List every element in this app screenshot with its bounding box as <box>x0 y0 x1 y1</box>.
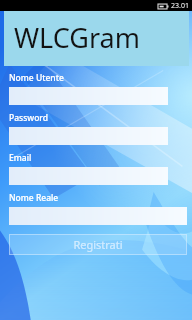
button[interactable] <box>9 87 168 105</box>
staticText: Password <box>9 112 49 124</box>
button[interactable] <box>9 127 168 145</box>
staticText: Email <box>9 152 32 164</box>
button[interactable] <box>9 207 187 225</box>
staticText: Nome Reale <box>9 192 59 204</box>
staticText: 23.01 <box>171 1 189 11</box>
button[interactable] <box>9 167 168 185</box>
staticText: Registrati <box>73 237 123 252</box>
button[interactable]: Registrati <box>9 234 187 255</box>
staticText: WLCGram <box>14 19 140 56</box>
other: Battery <box>158 3 169 10</box>
staticText: Nome Utente <box>9 72 64 84</box>
